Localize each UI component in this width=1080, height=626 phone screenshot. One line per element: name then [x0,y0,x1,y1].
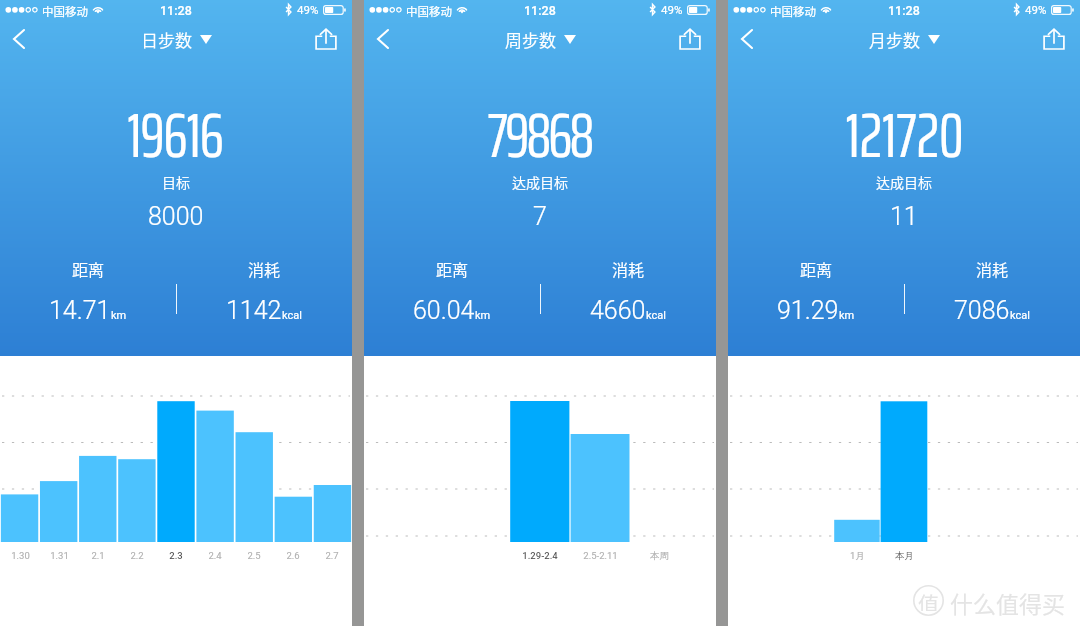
staticText: 1月 [850,550,865,562]
staticText: 8000 [148,202,204,231]
staticText: 11:28 [160,3,192,18]
button[interactable]: Back [2,22,36,56]
staticText: kcal [282,309,302,322]
staticText: 什么值得买 [950,586,1065,619]
staticText: 消耗 [976,257,1009,280]
staticText: 11 [890,202,918,231]
button[interactable]: Back [730,22,764,56]
staticText: 消耗 [248,257,281,280]
staticText: 2.6 [286,550,300,561]
button[interactable]: 月步数 [869,27,940,52]
staticText: km [111,309,127,322]
staticText: 目标 [162,172,190,192]
staticText: 2.1 [91,550,105,561]
staticText: 79868 [487,87,592,185]
staticText: 4660 [590,296,646,325]
staticText: 中国移动 [42,3,88,20]
button[interactable]: Share [308,21,344,57]
button[interactable]: 周步数 [505,27,576,52]
staticText: 49% [661,3,683,16]
staticText: 1.30 [11,550,30,561]
button[interactable]: Share [1036,21,1072,57]
staticText: 2.2 [130,550,144,561]
button[interactable]: 日步数 [141,27,212,52]
staticText: 本周 [650,550,669,562]
staticText: 日步数 [141,27,192,52]
staticText: 距离 [436,257,469,280]
staticText: 月步数 [869,27,920,52]
staticText: 距离 [800,257,833,280]
staticText: 91.29 [777,296,839,325]
staticText: 中国移动 [406,3,452,20]
staticText: 2.5 [247,550,261,561]
staticText: 2.4 [208,550,222,561]
staticText: 7 [533,202,547,231]
staticText: 2.3 [169,550,183,561]
staticText: 达成目标 [512,172,568,192]
staticText: km [475,309,491,322]
staticText: 本月 [895,550,914,562]
staticText: 49% [297,3,319,16]
staticText: 1142 [226,296,282,325]
staticText: 达成目标 [876,172,932,192]
staticText: kcal [646,309,666,322]
button[interactable]: Share [672,21,708,57]
staticText: 消耗 [612,257,645,280]
staticText: 11:28 [524,3,556,18]
staticText: 1.29-2.4 [522,550,558,561]
staticText: 19616 [127,87,223,185]
staticText: 14.71 [49,296,111,325]
staticText: 7086 [954,296,1010,325]
staticText: 11:28 [888,3,920,18]
staticText: kcal [1010,309,1030,322]
staticText: km [839,309,855,322]
staticText: 2.5-2.11 [583,550,618,561]
staticText: 距离 [72,257,105,280]
button[interactable]: Back [366,22,400,56]
staticText: 60.04 [413,296,475,325]
staticText: 121720 [845,87,964,185]
staticText: 49% [1025,3,1047,16]
staticText: 中国移动 [770,3,816,20]
staticText: 值 [918,588,939,611]
staticText: 周步数 [505,27,556,52]
staticText: 2.7 [325,550,339,561]
staticText: 1.31 [50,550,69,561]
